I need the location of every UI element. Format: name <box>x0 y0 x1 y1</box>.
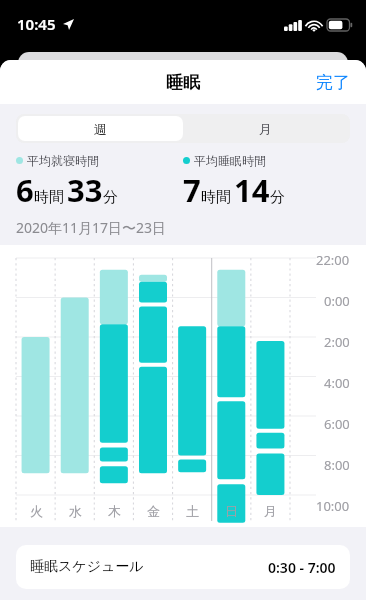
staticText: 完了 <box>316 72 350 93</box>
staticText: 14 <box>234 169 270 211</box>
button[interactable]: 睡眠スケジュール <box>16 545 350 589</box>
staticText: 6 <box>16 169 34 211</box>
staticText: 10:00 <box>316 497 350 515</box>
staticText: 4:00 <box>324 374 350 392</box>
staticText: 睡眠 <box>166 72 200 93</box>
staticText: 22:00 <box>316 251 350 269</box>
staticText: 月 <box>264 503 277 519</box>
staticText: 8:00 <box>324 456 350 474</box>
staticText: 平均睡眠時間 <box>194 153 266 168</box>
button[interactable]: 月 <box>183 116 348 141</box>
staticText: 33 <box>67 169 103 211</box>
staticText: 2020年11月17日〜23日 <box>16 218 167 237</box>
staticText: 分 <box>270 188 285 207</box>
staticText: 0:00 <box>324 292 350 310</box>
staticText: 分 <box>103 188 118 207</box>
staticText: 平均就寝時間 <box>27 153 99 168</box>
staticText: 2:00 <box>324 333 350 351</box>
staticText: 日 <box>225 503 238 519</box>
staticText: 6:00 <box>324 415 350 433</box>
staticText: 時間 <box>34 188 64 207</box>
staticText: 木 <box>108 503 121 519</box>
button[interactable]: 週 <box>18 116 183 141</box>
staticText: 水 <box>69 503 82 519</box>
staticText: 月 <box>259 121 272 137</box>
staticText: 土 <box>186 503 199 519</box>
staticText: 10:45 <box>17 14 56 34</box>
staticText: 時間 <box>201 188 231 207</box>
button[interactable]: 完了 <box>300 62 366 103</box>
staticText: 0:30 - 7:00 <box>268 558 336 577</box>
staticText: 金 <box>147 503 160 519</box>
staticText: 7 <box>183 169 201 211</box>
staticText: 睡眠スケジュール <box>30 558 144 576</box>
staticText: 火 <box>30 503 43 519</box>
staticText: 週 <box>94 121 107 137</box>
